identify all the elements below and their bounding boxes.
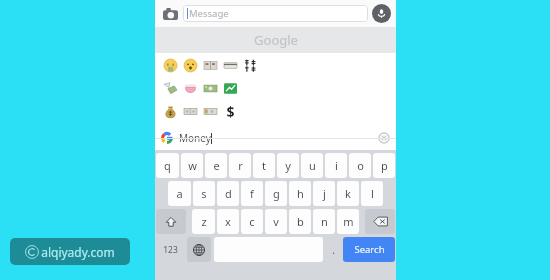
button[interactable]: o bbox=[349, 153, 371, 178]
button[interactable]: a bbox=[168, 181, 191, 206]
button[interactable]: z bbox=[192, 209, 215, 234]
button[interactable]: $ bbox=[220, 101, 240, 121]
staticText: a bbox=[176, 186, 183, 201]
button[interactable]: Change keyboard language bbox=[187, 237, 211, 262]
button[interactable]: 123 bbox=[156, 237, 184, 262]
button[interactable]: Emoji bbox=[200, 101, 220, 121]
button[interactable]: x bbox=[217, 209, 239, 234]
staticText: alqiyady.com bbox=[41, 244, 115, 260]
staticText: d bbox=[225, 186, 232, 201]
button[interactable]: y bbox=[277, 153, 299, 178]
staticText: z bbox=[201, 214, 207, 229]
button[interactable]: b bbox=[289, 209, 311, 234]
staticText: m bbox=[343, 214, 354, 229]
button[interactable]: j bbox=[313, 181, 335, 206]
staticText: b bbox=[297, 214, 304, 229]
button[interactable]: e bbox=[205, 153, 227, 178]
button[interactable]: Camera bbox=[159, 3, 181, 25]
button[interactable]: Emoji bbox=[160, 78, 180, 98]
button[interactable]: i bbox=[325, 153, 347, 178]
staticText: y bbox=[285, 158, 291, 173]
button[interactable]: p bbox=[373, 153, 395, 178]
button[interactable]: Money bbox=[155, 126, 396, 150]
button[interactable]: Backspace bbox=[365, 209, 395, 234]
staticText: u bbox=[309, 158, 316, 173]
button[interactable]: r bbox=[229, 153, 251, 178]
button[interactable]: d bbox=[217, 181, 239, 206]
staticText: o bbox=[357, 158, 364, 173]
button[interactable]: s bbox=[193, 181, 215, 206]
button[interactable]: f bbox=[241, 181, 263, 206]
staticText: t bbox=[262, 158, 266, 173]
staticText: Google bbox=[254, 31, 298, 49]
button[interactable]: Emoji bbox=[160, 55, 180, 75]
staticText: j bbox=[323, 186, 326, 201]
staticText: Search bbox=[354, 243, 385, 256]
staticText: c bbox=[249, 214, 255, 229]
button[interactable]: n bbox=[313, 209, 335, 234]
button[interactable]: Emoji bbox=[180, 101, 200, 121]
button[interactable]: . bbox=[326, 237, 340, 262]
button[interactable]: Emoji bbox=[200, 55, 220, 75]
button[interactable]: Emoji bbox=[160, 101, 180, 121]
button[interactable]: q bbox=[156, 153, 179, 178]
button[interactable]: k bbox=[337, 181, 359, 206]
button[interactable]: Emoji bbox=[200, 78, 220, 98]
button[interactable]: g bbox=[265, 181, 287, 206]
staticText: p bbox=[381, 158, 388, 173]
button[interactable]: t bbox=[253, 153, 275, 178]
button[interactable]: Emoji bbox=[220, 78, 240, 98]
staticText: 123 bbox=[163, 244, 178, 256]
staticText: l bbox=[371, 186, 374, 201]
staticText: n bbox=[321, 214, 328, 229]
button[interactable]: Voice input bbox=[372, 4, 391, 23]
staticText: e bbox=[213, 158, 220, 173]
button[interactable]: c bbox=[241, 209, 263, 234]
button[interactable]: Shift bbox=[156, 209, 186, 234]
button[interactable]: m bbox=[337, 209, 359, 234]
staticText: v bbox=[273, 214, 279, 229]
staticText: q bbox=[164, 158, 171, 173]
staticText: Message bbox=[189, 7, 229, 20]
staticText: $ bbox=[226, 102, 235, 121]
button[interactable]: u bbox=[301, 153, 323, 178]
button[interactable]: h bbox=[289, 181, 311, 206]
button[interactable]: Emoji bbox=[220, 55, 240, 75]
staticText: . bbox=[332, 243, 335, 257]
staticText: i bbox=[335, 158, 338, 173]
button[interactable]: w bbox=[181, 153, 203, 178]
staticText: r bbox=[238, 158, 243, 173]
staticText: s bbox=[201, 186, 207, 201]
button[interactable]: Search bbox=[343, 237, 395, 262]
staticText: w bbox=[188, 158, 197, 173]
staticText: f bbox=[250, 186, 254, 201]
button[interactable]: Message bbox=[183, 5, 368, 22]
staticText: Money bbox=[179, 131, 211, 145]
staticText: x bbox=[225, 214, 231, 229]
staticText: h bbox=[297, 186, 304, 201]
button[interactable]: Emoji bbox=[180, 55, 200, 75]
staticText: k bbox=[345, 186, 351, 201]
staticText: g bbox=[273, 186, 280, 201]
button[interactable]: v bbox=[265, 209, 287, 234]
button[interactable]: Emoji bbox=[180, 78, 200, 98]
button[interactable]: Emoji bbox=[240, 55, 260, 75]
button[interactable]: Clear search bbox=[378, 132, 390, 144]
button[interactable]: l bbox=[361, 181, 383, 206]
